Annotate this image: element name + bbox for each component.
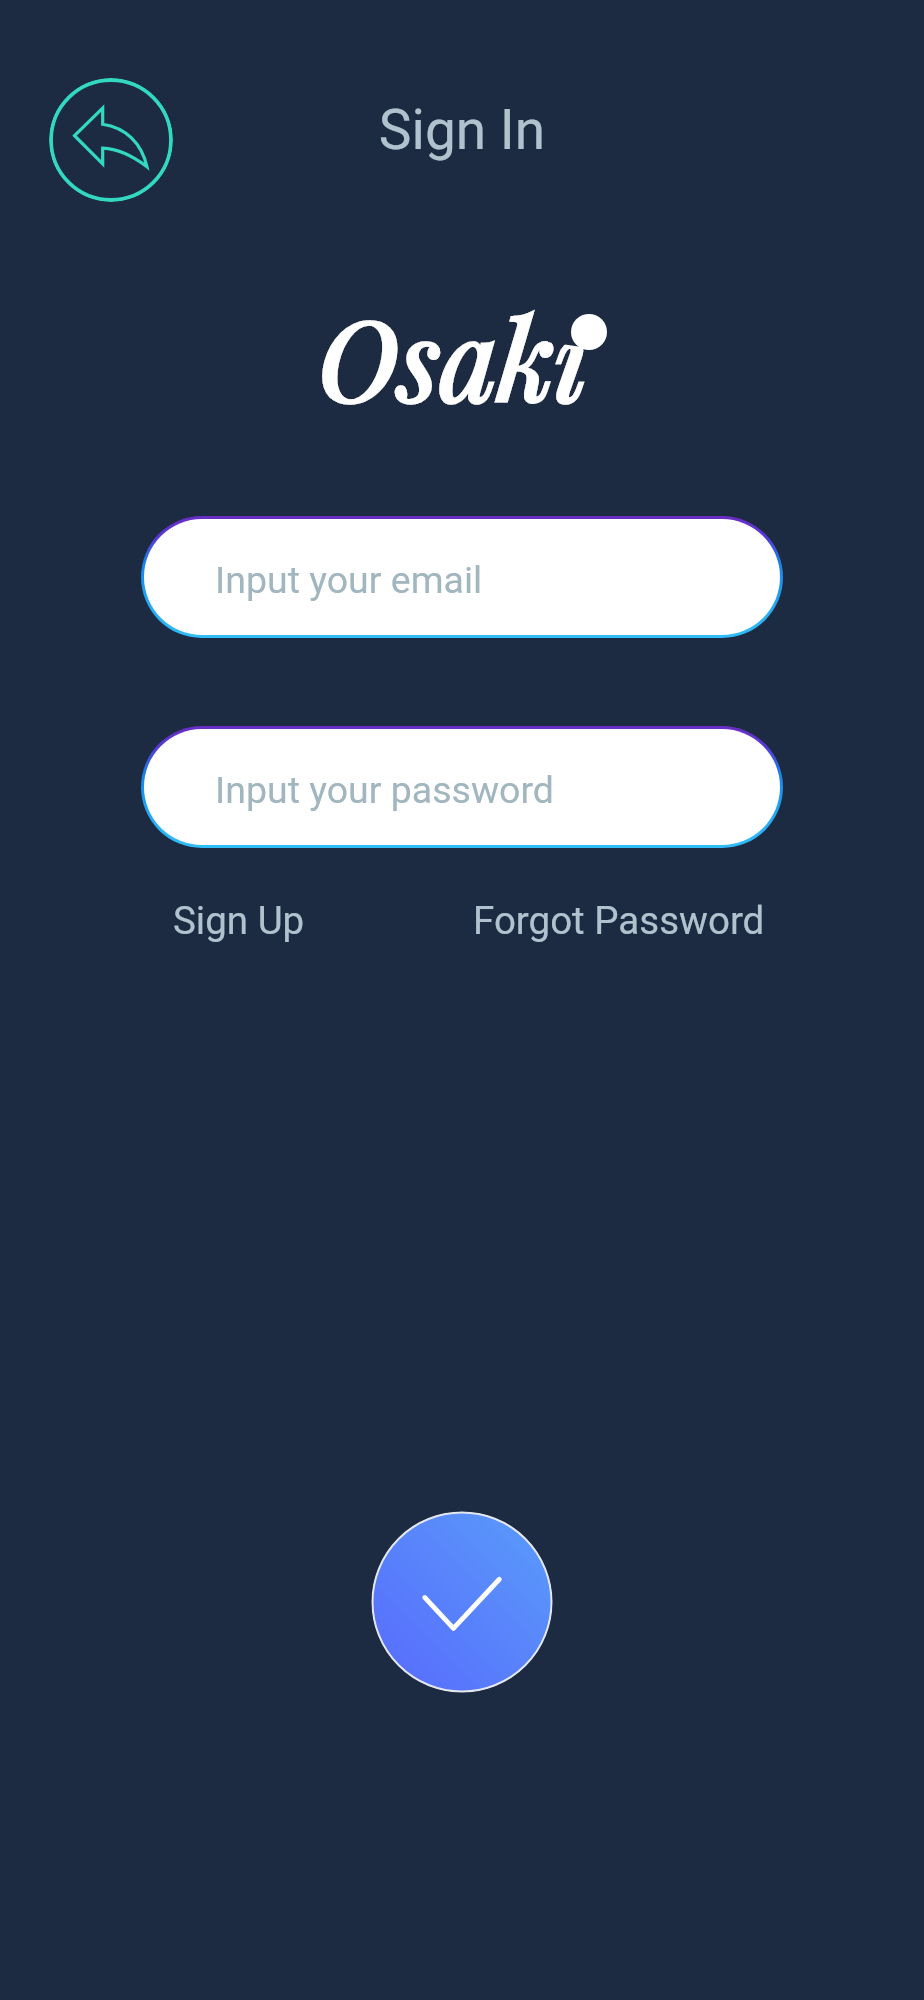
button[interactable]: Back <box>49 78 173 202</box>
staticText: Input your email <box>215 558 483 602</box>
staticText: Sign In <box>0 98 924 162</box>
staticText: Sign Up <box>173 898 305 943</box>
staticText: Osaki <box>318 282 588 429</box>
button[interactable]: Sign Up <box>165 892 313 949</box>
button[interactable]: Input your password <box>144 729 780 845</box>
button[interactable]: Input your email <box>144 519 780 635</box>
staticText: Input your password <box>215 768 554 812</box>
button[interactable]: Submit <box>371 1511 553 1693</box>
staticText: Forgot Password <box>473 898 765 943</box>
button[interactable]: Forgot Password <box>465 892 773 949</box>
